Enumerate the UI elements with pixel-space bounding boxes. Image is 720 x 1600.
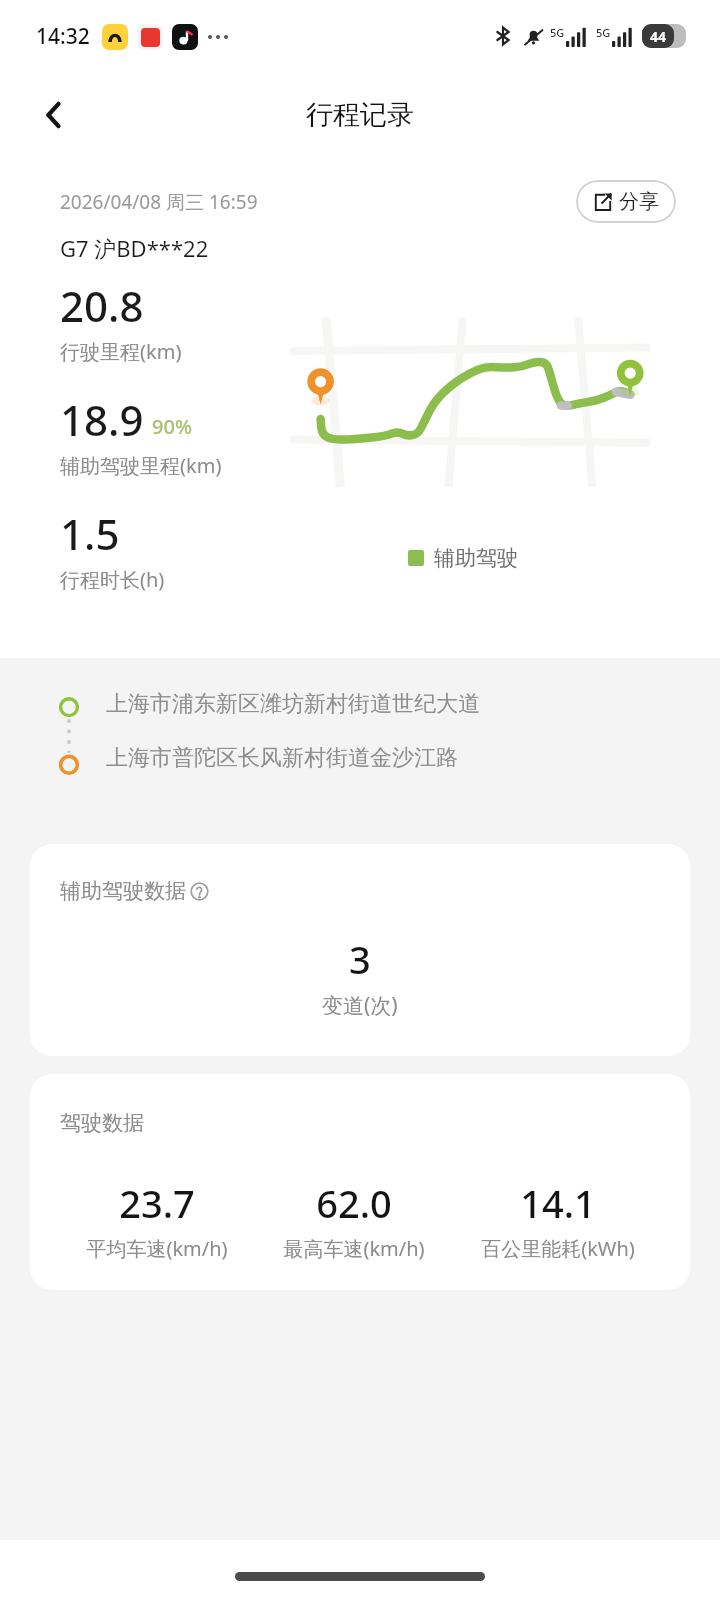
staticText: 辅助驾驶里程(km) <box>60 452 222 479</box>
staticText: 上海市浦东新区潍坊新村街道世纪大道 <box>106 690 480 718</box>
staticText: 辅助驾驶 <box>434 545 518 571</box>
staticText: 驾驶数据 <box>60 1110 144 1136</box>
staticText: 20.8 <box>60 277 144 334</box>
staticText: 变道(次) <box>322 991 398 1020</box>
staticText: 辅助驾驶数据 <box>60 878 186 904</box>
staticText: 行驶里程(km) <box>60 338 182 365</box>
button[interactable]: 辅助驾驶数据 <box>30 844 690 1056</box>
staticText: 18.9 <box>60 391 144 448</box>
staticText: 5G <box>596 25 611 40</box>
staticText: 2026/04/08 周三 16:59 <box>60 189 258 215</box>
staticText: G7 沪BD***22 <box>60 233 209 263</box>
staticText: 90% <box>152 413 192 440</box>
staticText: 百公里能耗(kWh) <box>481 1235 635 1262</box>
staticText: 最高车速(km/h) <box>283 1235 425 1262</box>
staticText: 上海市普陀区长风新村街道金沙江路 <box>106 744 458 772</box>
staticText: 23.7 <box>119 1177 195 1229</box>
staticText: 3 <box>349 933 371 985</box>
staticText: 14:32 <box>36 22 90 51</box>
staticText: 1.5 <box>60 505 120 562</box>
button[interactable]: 驾驶数据 <box>30 1074 690 1290</box>
staticText: 平均车速(km/h) <box>86 1235 228 1262</box>
staticText: 44 <box>650 27 667 46</box>
staticText: 62.0 <box>316 1177 392 1229</box>
staticText: 14.1 <box>520 1177 596 1229</box>
staticText: 分享 <box>619 189 659 214</box>
button[interactable]: 分享 <box>576 180 676 223</box>
staticText: 5G <box>550 25 565 40</box>
staticText: 行程记录 <box>306 98 414 132</box>
button[interactable]: Back <box>24 85 84 145</box>
staticText: 行程时长(h) <box>60 566 165 593</box>
